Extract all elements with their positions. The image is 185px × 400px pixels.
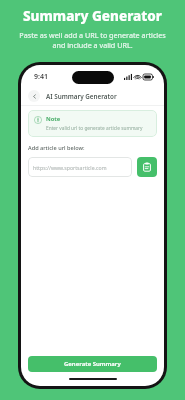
button[interactable]: Paste from clipboard	[137, 157, 157, 177]
staticText: Generate Summary	[64, 360, 121, 368]
staticText: Enter valid url to generate article summ…	[46, 125, 143, 132]
button[interactable]: Note	[28, 110, 157, 137]
button[interactable]: Back	[28, 90, 40, 102]
staticText: https://www.sportsarticle.com	[33, 164, 107, 171]
staticText: Note	[46, 115, 61, 123]
staticText: AI Summary Generator	[46, 92, 117, 101]
button[interactable]: https://www.sportsarticle.com	[28, 157, 132, 177]
staticText: Summary Generator	[23, 7, 162, 25]
staticText: Paste as well add a URL to generate arti…	[19, 30, 166, 50]
staticText: Add article url below:	[28, 144, 85, 152]
staticText: 9:41	[34, 72, 48, 82]
button[interactable]: Generate Summary	[28, 356, 157, 372]
